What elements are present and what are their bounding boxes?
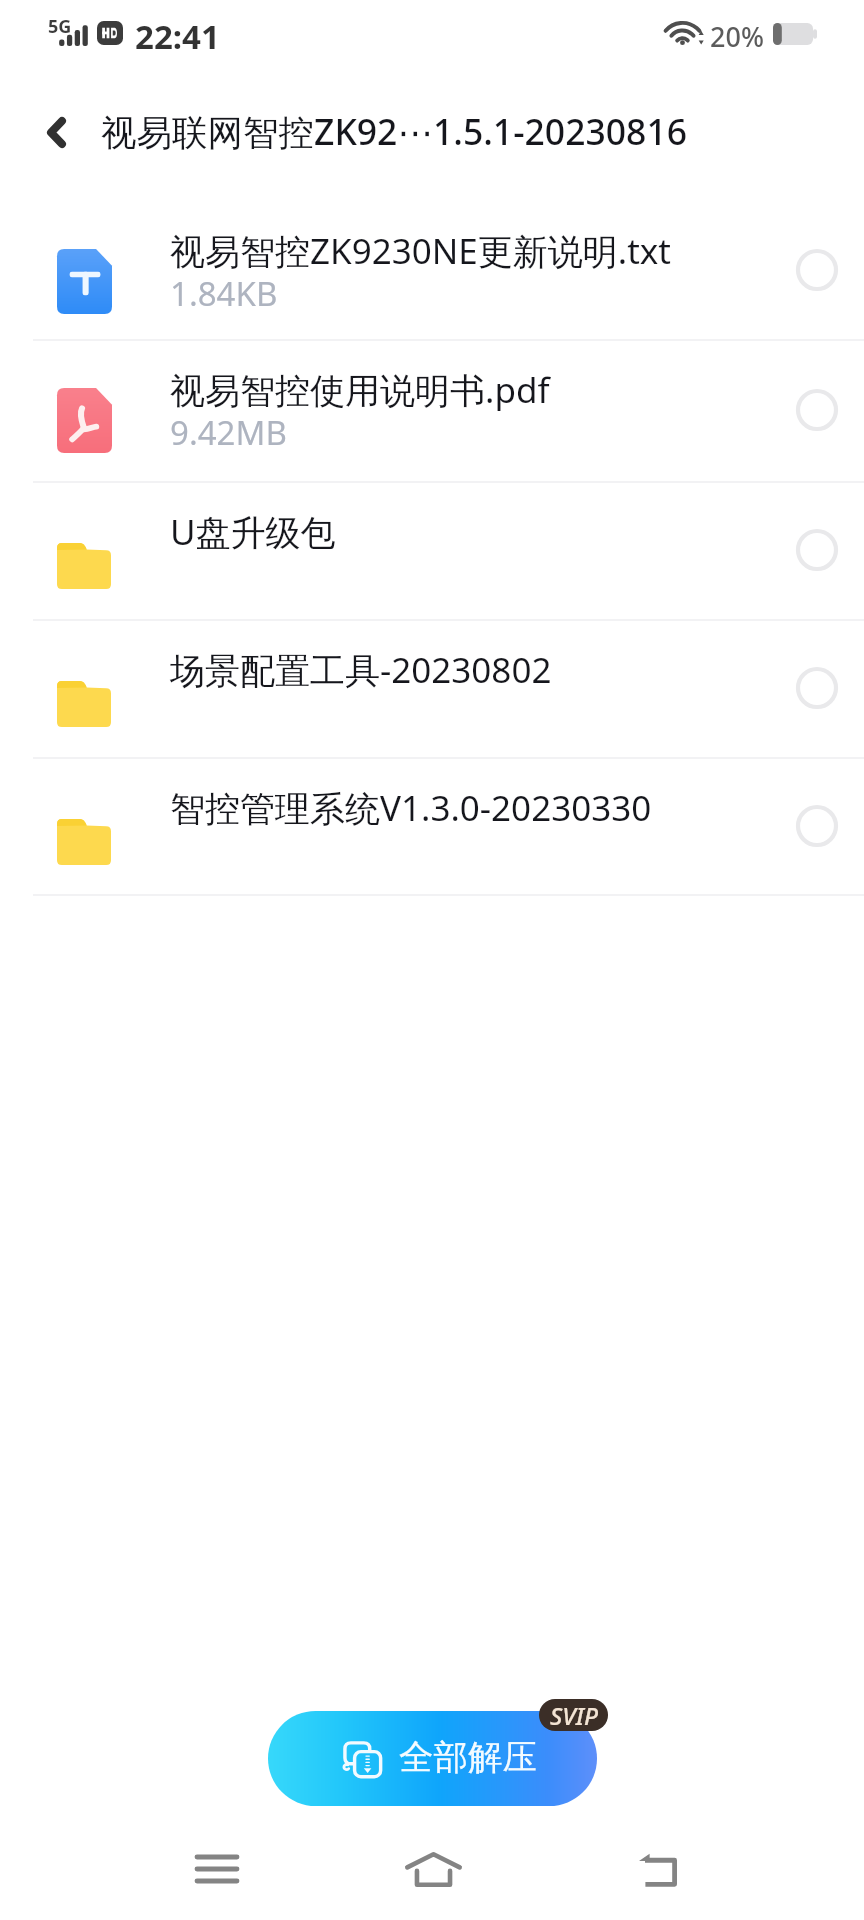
staticText: 9.42MB [170, 410, 287, 455]
button[interactable]: SVIP [539, 1699, 608, 1731]
button[interactable]: Home [373, 1829, 493, 1909]
staticText: 视易智控使用说明书.pdf [170, 366, 770, 414]
button[interactable]: Back [26, 102, 86, 162]
button[interactable]: 智控管理系统V1.3.0-20230330 [0, 757, 864, 894]
staticText: SVIP [550, 1699, 598, 1731]
staticText: 1.84KB [170, 271, 278, 316]
button[interactable]: Select item [772, 781, 862, 871]
staticText: 智控管理系统V1.3.0-20230330 [170, 784, 770, 832]
button[interactable]: 视易智控ZK9230NE更新说明.txt [0, 200, 864, 339]
button[interactable]: U盘升级包 [0, 481, 864, 619]
button[interactable]: 全部解压 [268, 1711, 597, 1806]
staticText: 22:41 [135, 14, 220, 59]
staticText: 视易联网智控ZK92⋯1.5.1-20230816 [101, 107, 846, 155]
button[interactable]: 视易智控使用说明书.pdf [0, 339, 864, 481]
button[interactable]: 场景配置工具-20230802 [0, 619, 864, 757]
staticText: U盘升级包 [170, 508, 770, 556]
staticText: 视易智控ZK9230NE更新说明.txt [170, 227, 770, 275]
button[interactable]: Select item [772, 643, 862, 733]
staticText: 20% [710, 18, 764, 55]
button[interactable]: Select item [772, 365, 862, 455]
staticText: 场景配置工具-20230802 [170, 646, 770, 694]
button[interactable]: Back [599, 1829, 719, 1909]
staticText: 5G [48, 14, 72, 39]
button[interactable]: Select item [772, 505, 862, 595]
button[interactable]: Select item [772, 225, 862, 315]
button[interactable]: Recent apps [157, 1829, 277, 1909]
staticText: 全部解压 [399, 1736, 537, 1779]
